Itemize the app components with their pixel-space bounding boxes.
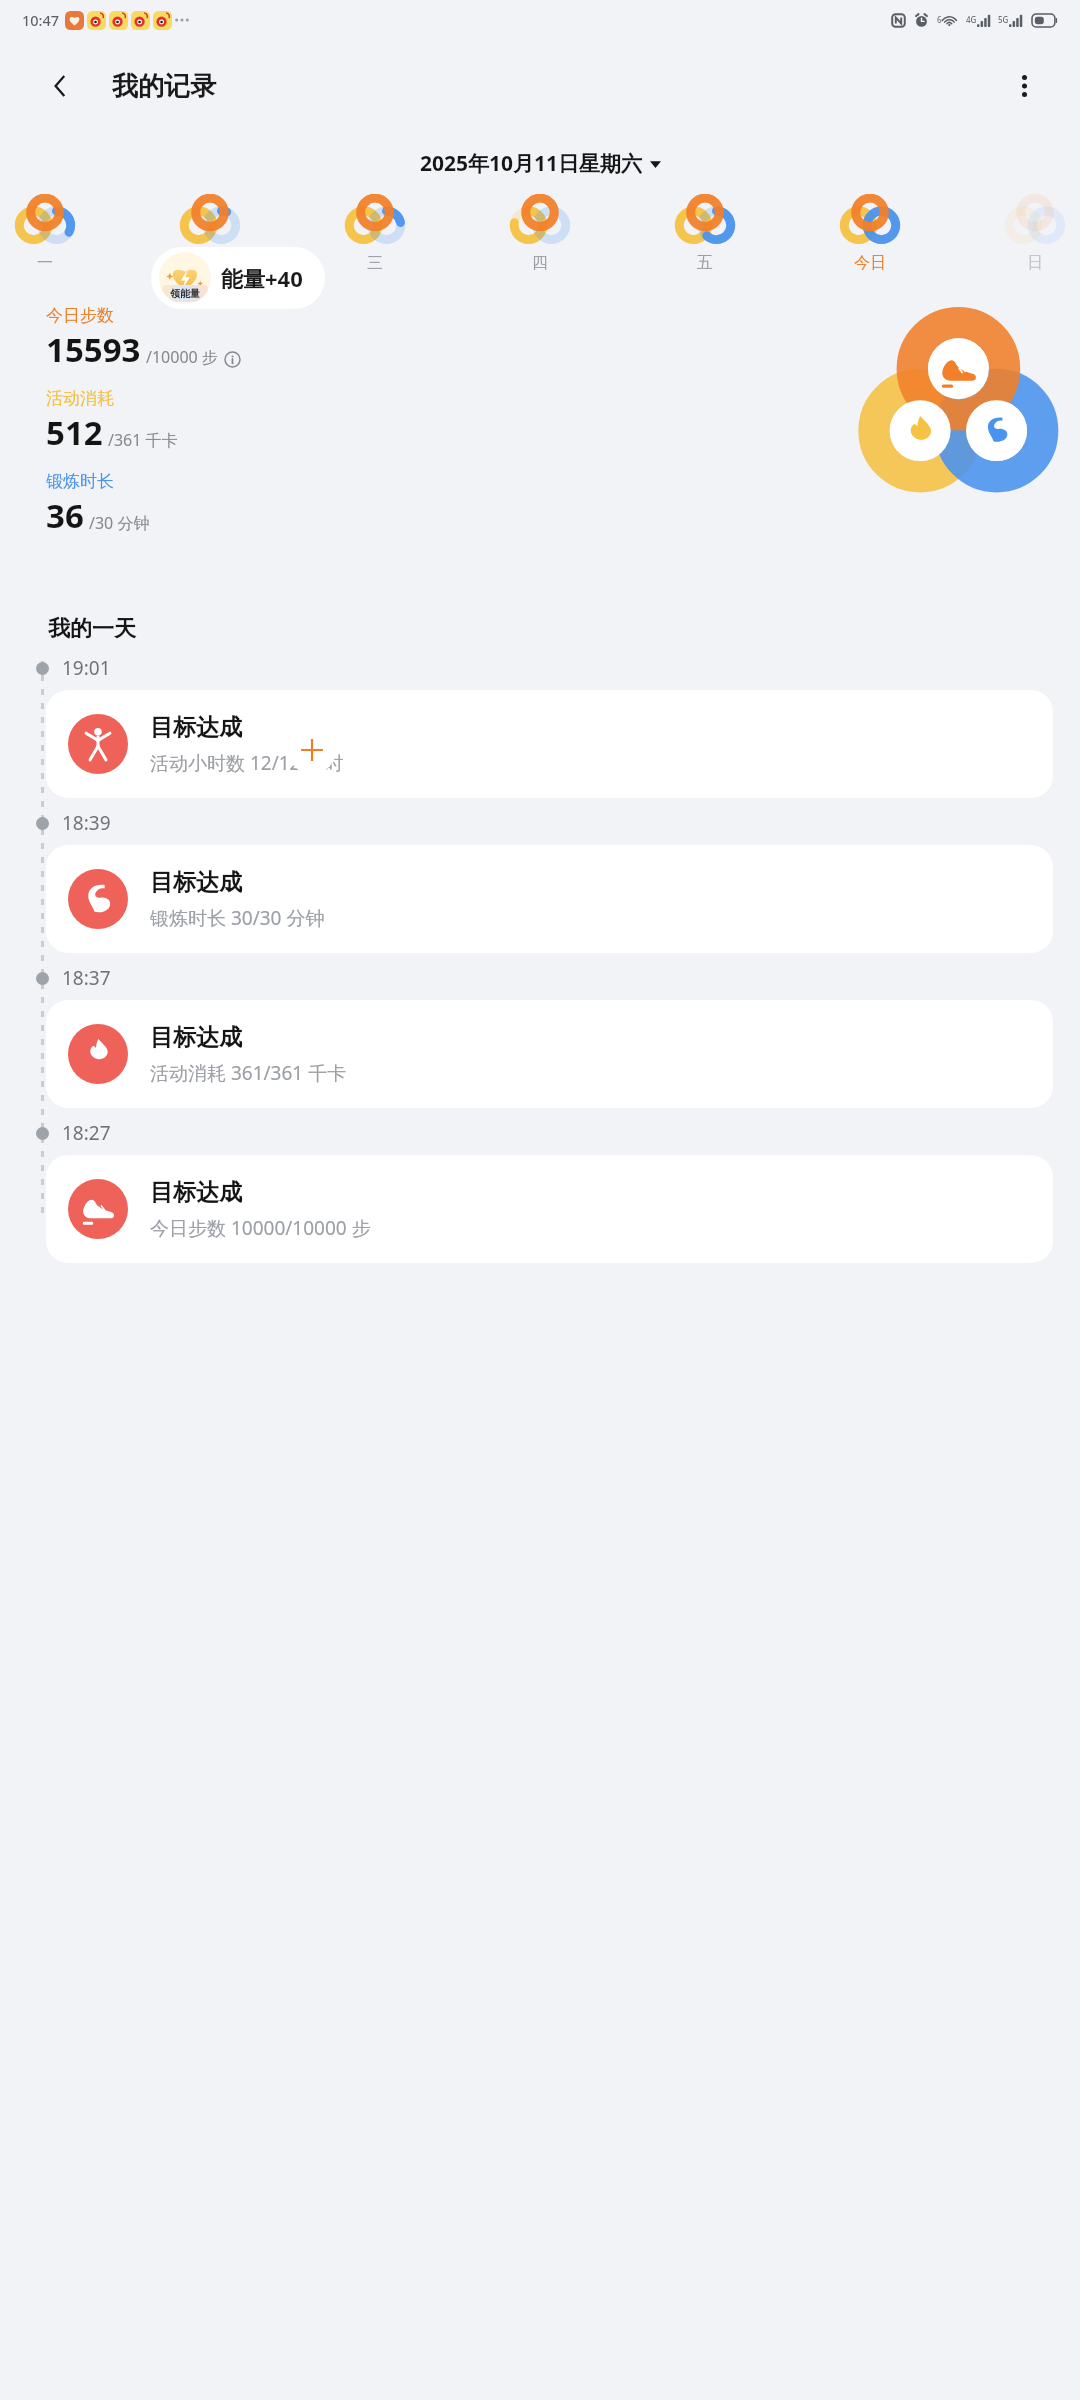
staticText: 15593 (46, 327, 141, 372)
staticText: 四 (532, 253, 548, 273)
button[interactable]: Activity rings (855, 301, 1060, 506)
staticText: 目标达成 (150, 713, 242, 742)
staticText: 能量+40 (221, 263, 303, 293)
button[interactable]: 日 (1004, 194, 1066, 277)
staticText: 锻炼时长 (46, 471, 114, 492)
staticText: 三 (367, 253, 383, 273)
staticText: 10:47 (22, 10, 60, 30)
staticText: /361 千卡 (108, 429, 178, 451)
button[interactable]: 2025年10月11日星期六 (414, 147, 667, 180)
button[interactable]: 三 (344, 194, 406, 277)
staticText: 活动小时数 12/12 小时 (150, 750, 344, 776)
button[interactable]: 今日步数 (46, 305, 240, 372)
button[interactable]: 目标达成 (46, 1155, 1053, 1263)
staticText: /10000 步 (146, 346, 218, 368)
staticText: 18:39 (62, 810, 111, 836)
staticText: 我的记录 (112, 70, 216, 103)
staticText: 18:37 (62, 965, 111, 991)
button[interactable]: 五 (674, 194, 736, 277)
staticText: 今日步数 (46, 305, 114, 326)
button[interactable]: 今日 (839, 194, 901, 277)
staticText: 18:27 (62, 1120, 111, 1146)
staticText: 6 (937, 14, 942, 25)
staticText: 4G (966, 14, 977, 25)
button[interactable]: Add record (288, 726, 336, 774)
staticText: 领能量 (170, 287, 200, 300)
button[interactable]: 四 (509, 194, 571, 277)
staticText: /30 分钟 (89, 512, 150, 534)
staticText: 一 (37, 253, 53, 273)
staticText: 2025年10月11日星期六 (420, 149, 643, 178)
staticText: 目标达成 (150, 1178, 242, 1207)
button[interactable]: 目标达成 (46, 690, 1053, 798)
staticText: 二 (202, 253, 218, 273)
staticText: 锻炼时长 30/30 分钟 (150, 905, 325, 931)
staticText: 512 (46, 410, 103, 455)
button[interactable]: 目标达成 (46, 845, 1053, 953)
staticText: 目标达成 (150, 1023, 242, 1052)
button[interactable]: 目标达成 (46, 1000, 1053, 1108)
staticText: 今日步数 10000/10000 步 (150, 1215, 371, 1241)
staticText: 今日 (854, 253, 886, 273)
button[interactable]: 活动消耗 (46, 388, 178, 455)
staticText: 19:01 (62, 655, 111, 681)
staticText: 目标达成 (150, 868, 242, 897)
button[interactable]: 领能量 (151, 247, 325, 309)
staticText: 日 (1027, 253, 1043, 273)
button[interactable]: 一 (14, 194, 76, 277)
staticText: 36 (46, 493, 84, 538)
button[interactable]: More options (1004, 66, 1044, 106)
staticText: 五 (697, 253, 713, 273)
staticText: 5G (998, 14, 1009, 25)
staticText: 我的一天 (48, 615, 136, 643)
button[interactable]: 锻炼时长 (46, 471, 150, 538)
button[interactable]: 二 (179, 194, 241, 277)
staticText: 活动消耗 (46, 388, 114, 409)
staticText: 活动消耗 361/361 千卡 (150, 1060, 347, 1086)
button[interactable]: Back (40, 66, 80, 106)
